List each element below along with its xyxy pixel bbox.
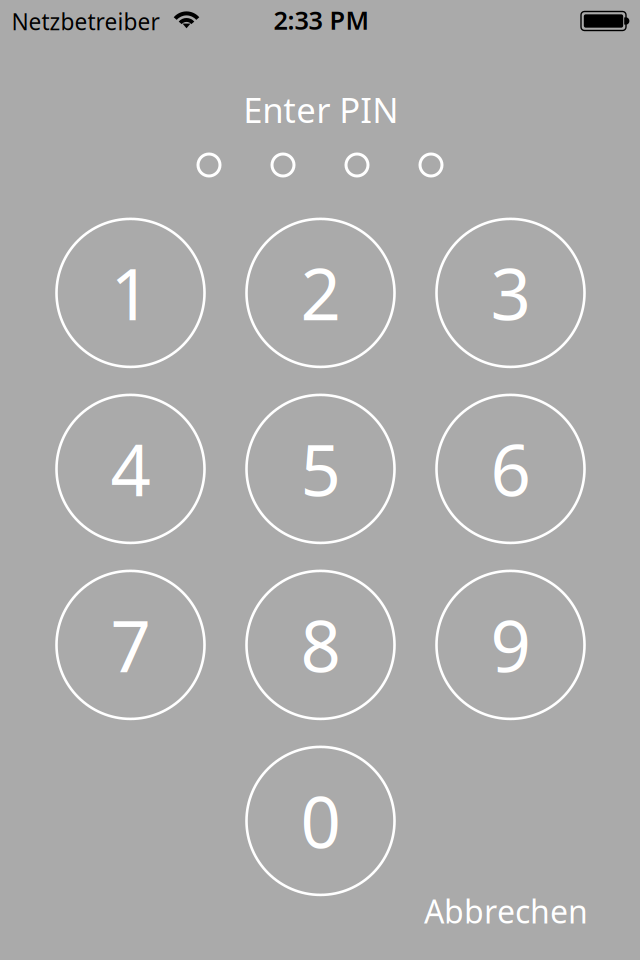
staticText: 7 xyxy=(110,598,150,692)
staticText: 2:33 PM xyxy=(273,3,369,37)
button[interactable]: Abbrechen xyxy=(412,889,588,933)
button[interactable]: 5 xyxy=(244,393,396,545)
button[interactable]: 7 xyxy=(54,569,206,721)
staticText: Enter PIN xyxy=(243,86,398,132)
button[interactable]: 3 xyxy=(434,217,586,369)
button[interactable]: 6 xyxy=(434,393,586,545)
button[interactable]: 1 xyxy=(54,217,206,369)
staticText: Abbrechen xyxy=(424,890,588,932)
staticText: 2 xyxy=(300,246,340,340)
staticText: 8 xyxy=(300,598,340,692)
button[interactable]: 0 xyxy=(244,745,396,897)
button[interactable]: 4 xyxy=(54,393,206,545)
button[interactable]: 2 xyxy=(244,217,396,369)
staticText: 3 xyxy=(490,246,530,340)
button[interactable]: 8 xyxy=(244,569,396,721)
staticText: 6 xyxy=(490,422,530,516)
button[interactable]: 9 xyxy=(434,569,586,721)
staticText: Netzbetreiber xyxy=(11,6,159,36)
staticText: 1 xyxy=(110,246,150,340)
staticText: 5 xyxy=(300,422,340,516)
staticText: 9 xyxy=(490,598,530,692)
staticText: 4 xyxy=(110,422,150,516)
staticText: 0 xyxy=(300,774,340,868)
